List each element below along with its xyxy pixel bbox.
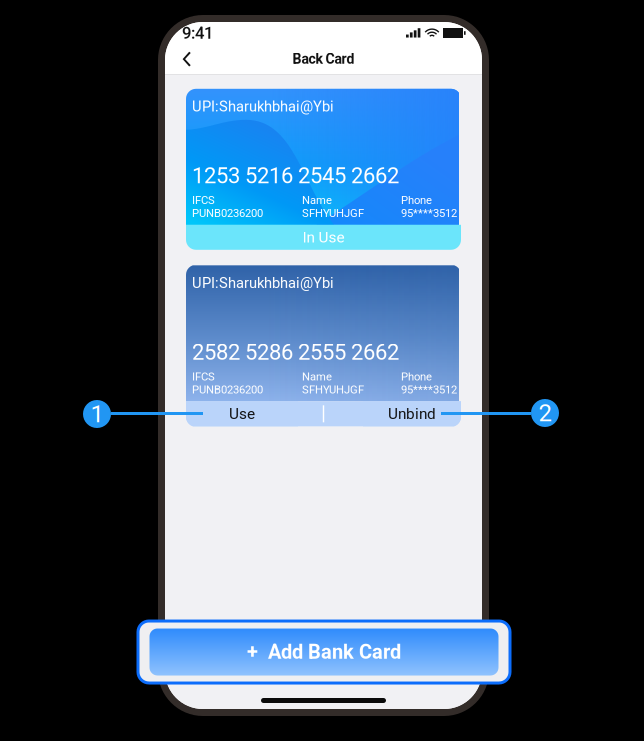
staticText: In Use <box>302 228 344 246</box>
button[interactable]: + Add Bank Card <box>149 628 498 675</box>
staticText: Name <box>302 370 332 383</box>
staticText: 2 <box>538 399 551 427</box>
button[interactable]: In Use <box>186 225 461 250</box>
staticText: 2582 5286 2555 2662 <box>192 339 399 365</box>
staticText: IFCS <box>192 194 215 207</box>
staticText: Use <box>229 405 255 423</box>
staticText: Unbind <box>388 405 436 423</box>
button[interactable]: Back <box>174 43 199 74</box>
staticText: 1253 5216 2545 2662 <box>192 163 399 189</box>
staticText: 1 <box>90 400 103 428</box>
staticText: 95****3512 <box>401 207 457 220</box>
staticText: 95****3512 <box>401 383 457 396</box>
staticText: Back Card <box>292 51 354 67</box>
staticText: UPI:Sharukhbhai@Ybi <box>192 98 334 115</box>
staticText: PUNB0236200 <box>192 383 263 396</box>
staticText: Phone <box>401 194 432 207</box>
button[interactable]: Unbind <box>363 401 461 426</box>
staticText: 9:41 <box>182 23 213 43</box>
staticText: UPI:Sharukhbhai@Ybi <box>192 274 334 291</box>
staticText: PUNB0236200 <box>192 207 263 220</box>
staticText: + Add Bank Card <box>247 640 401 664</box>
button[interactable]: Use <box>186 401 298 426</box>
staticText: Name <box>302 194 332 207</box>
staticText: IFCS <box>192 370 215 383</box>
staticText: Phone <box>401 370 432 383</box>
staticText: SFHYUHJGF <box>302 207 364 220</box>
staticText: SFHYUHJGF <box>302 383 364 396</box>
